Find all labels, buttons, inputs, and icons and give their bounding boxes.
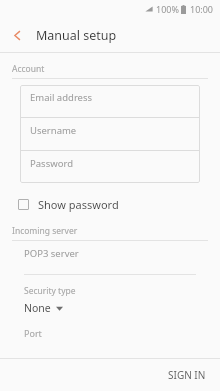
button[interactable]: POP3 server: [0, 241, 220, 275]
staticText: POP3 server: [24, 247, 79, 260]
staticText: Port: [24, 327, 42, 339]
staticText: 100%: [156, 3, 179, 15]
staticText: Password: [30, 157, 73, 170]
button[interactable]: Email address: [20, 85, 200, 117]
staticText: Show password: [38, 197, 119, 212]
button[interactable]: Username: [20, 118, 200, 150]
staticText: SIGN IN: [168, 368, 206, 382]
staticText: Manual setup: [36, 27, 117, 44]
button[interactable]: SIGN IN: [154, 361, 220, 389]
staticText: Username: [30, 124, 77, 137]
staticText: Account: [12, 63, 45, 75]
button[interactable]: Show password: [0, 193, 220, 215]
staticText: 10:00: [190, 3, 214, 15]
button[interactable]: Password: [20, 151, 200, 183]
staticText: None: [24, 301, 51, 315]
staticText: Email address: [30, 91, 93, 104]
button[interactable]: Security type: [0, 285, 220, 315]
button[interactable]: Back: [0, 18, 34, 52]
staticText: Incoming server: [12, 225, 78, 237]
staticText: Security type: [24, 285, 76, 297]
